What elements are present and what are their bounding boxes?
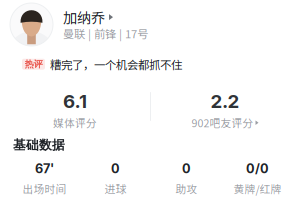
staticText: 0 <box>182 161 191 176</box>
staticText: 热评 <box>24 58 42 70</box>
staticText: 糟完了，一个机会都抓不住 <box>50 56 182 72</box>
staticText: 曼联 | 前锋 | 17号 <box>63 25 148 41</box>
staticText: 加纳乔 <box>63 7 105 27</box>
staticText: 助攻 <box>175 181 197 196</box>
staticText: 67' <box>35 161 54 176</box>
staticText: 基础数据 <box>13 137 65 153</box>
staticText: 黄牌/红牌 <box>233 181 281 196</box>
button[interactable]: 2.2 <box>150 90 300 126</box>
staticText: 2.2 <box>210 90 239 113</box>
staticText: 进球 <box>104 181 126 196</box>
staticText: 0/0 <box>246 161 269 176</box>
staticText: 902吧友评分 <box>191 115 253 130</box>
button[interactable]: 加纳乔 <box>0 0 300 50</box>
staticText: 出场时间 <box>22 181 66 196</box>
staticText: 媒体评分 <box>53 115 97 130</box>
staticText: 0 <box>111 161 120 176</box>
staticText: 6.1 <box>63 90 87 113</box>
